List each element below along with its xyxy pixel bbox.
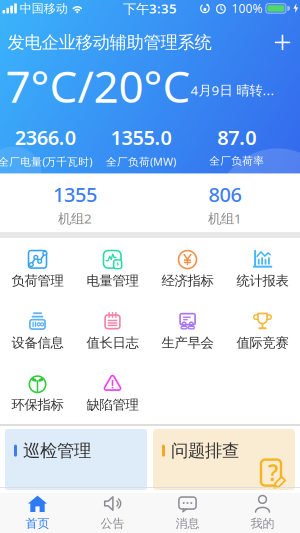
staticText: 全厂电量(万千瓦时) bbox=[0, 154, 92, 169]
button[interactable]: 环保指标 bbox=[0, 365, 75, 421]
staticText: 机组2 bbox=[58, 209, 92, 227]
button[interactable]: 值际竞赛 bbox=[225, 303, 300, 359]
button[interactable]: 缺陷管理 bbox=[75, 365, 150, 421]
staticText: 100% bbox=[231, 0, 262, 16]
button[interactable]: 值长日志 bbox=[75, 303, 150, 359]
staticText: 巡检管理 bbox=[23, 440, 91, 461]
staticText: 806 bbox=[208, 181, 241, 207]
staticText: ? bbox=[268, 457, 278, 487]
staticText: 问题排查 bbox=[171, 440, 239, 461]
staticText: 机组1 bbox=[208, 209, 242, 227]
button[interactable]: 806 bbox=[150, 181, 300, 227]
staticText: 中国移动 bbox=[20, 1, 68, 16]
button[interactable]: 首页 bbox=[0, 488, 75, 531]
button[interactable]: 1355 bbox=[0, 181, 150, 227]
button[interactable]: 消息 bbox=[150, 488, 225, 531]
staticText: 全厂负荷率 bbox=[209, 154, 264, 167]
staticText: 值际竞赛 bbox=[236, 335, 288, 351]
staticText: 生产早会 bbox=[161, 335, 213, 351]
staticText: 公告 bbox=[100, 516, 124, 531]
button[interactable]: 添加 bbox=[275, 35, 289, 49]
staticText: 87.0 bbox=[217, 124, 256, 150]
button[interactable]: 我的 bbox=[225, 488, 300, 531]
staticText: 电量管理 bbox=[86, 273, 138, 289]
button[interactable]: 巡检管理 bbox=[5, 429, 147, 490]
staticText: 7°C/20°C bbox=[5, 56, 190, 115]
staticText: 我的 bbox=[250, 516, 274, 531]
staticText: 下午3:35 bbox=[123, 0, 177, 17]
staticText: 统计报表 bbox=[236, 273, 288, 289]
staticText: 全厂负荷(MW) bbox=[106, 154, 176, 169]
staticText: 2366.0 bbox=[15, 124, 76, 150]
button[interactable]: 设备信息 bbox=[0, 303, 75, 359]
staticText: 消息 bbox=[175, 516, 199, 531]
staticText: 经济指标 bbox=[161, 273, 213, 289]
button[interactable]: 经济指标 bbox=[150, 241, 225, 297]
staticText: 1355 bbox=[53, 181, 97, 207]
button[interactable]: 负荷管理 bbox=[0, 241, 75, 297]
button[interactable]: 生产早会 bbox=[150, 303, 225, 359]
button[interactable]: 问题排查 bbox=[153, 429, 295, 490]
staticText: 4月9日 晴转... bbox=[190, 81, 274, 99]
staticText: 设备信息 bbox=[11, 335, 63, 351]
staticText: 1355.0 bbox=[110, 124, 171, 150]
staticText: 发电企业移动辅助管理系统 bbox=[7, 32, 211, 53]
staticText: 值长日志 bbox=[86, 335, 138, 351]
button[interactable]: 统计报表 bbox=[225, 241, 300, 297]
staticText: 负荷管理 bbox=[11, 273, 63, 289]
staticText: 首页 bbox=[25, 516, 49, 531]
button[interactable]: 电量管理 bbox=[75, 241, 150, 297]
staticText: 环保指标 bbox=[11, 397, 63, 413]
staticText: 缺陷管理 bbox=[86, 397, 138, 413]
button[interactable]: 公告 bbox=[75, 488, 150, 531]
